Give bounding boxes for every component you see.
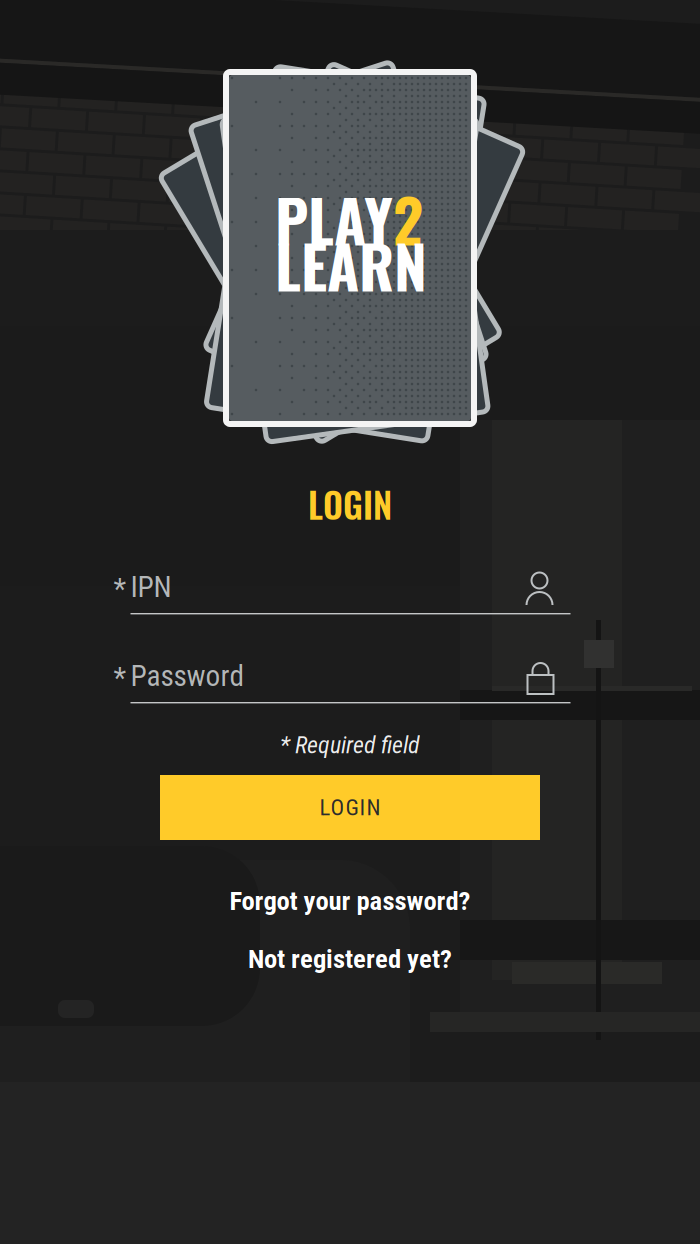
staticText: LEARN xyxy=(275,221,427,308)
staticText: IPN xyxy=(130,570,171,604)
staticText: * xyxy=(113,572,126,606)
button[interactable]: LOGIN xyxy=(160,775,540,840)
staticText: Forgot your password? xyxy=(229,885,470,917)
staticText: 2 xyxy=(393,175,423,262)
button[interactable]: Forgot your password? xyxy=(140,884,560,918)
staticText: Password xyxy=(130,659,244,693)
staticText: PLAY xyxy=(275,175,393,262)
staticText: LOGIN xyxy=(319,794,380,821)
staticText: * Required field xyxy=(280,731,420,759)
staticText: Not registered yet? xyxy=(248,943,452,975)
button[interactable]: Not registered yet? xyxy=(140,942,560,976)
staticText: LOGIN xyxy=(308,478,392,530)
staticText: * xyxy=(113,661,126,695)
